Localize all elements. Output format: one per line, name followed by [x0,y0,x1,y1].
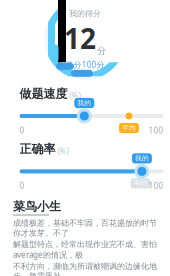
staticText: 总分100分 [65,59,104,70]
staticText: 成绩极差，基础不牢固，百花盛放的时节你才发芽。不了 [13,218,157,238]
staticText: 正确率 [19,142,55,156]
staticText: 12 [64,20,96,57]
staticText: 100 [148,125,163,136]
staticText: 0 [19,125,24,136]
staticText: (%) [69,90,80,101]
staticText: 平均 [133,179,147,187]
staticText: 0 [19,180,24,191]
staticText: 解题型特点，经常出现作业完不成、害怕average的情况，极 [13,239,157,260]
staticText: (%) [57,146,68,156]
staticText: 我的得分 [69,9,101,18]
staticText: 我的 [135,154,149,162]
staticText: 菜鸟小生 [13,199,61,214]
staticText: 100 [148,180,163,191]
staticText: 我的 [77,99,91,107]
staticText: 平均 [122,124,136,132]
staticText: 做题速度 [19,86,67,101]
staticText: 分 [97,45,106,57]
staticText: 不利方向，濒临为所谓被嘲讽的边缘化地步。急需恶补 [13,261,157,276]
